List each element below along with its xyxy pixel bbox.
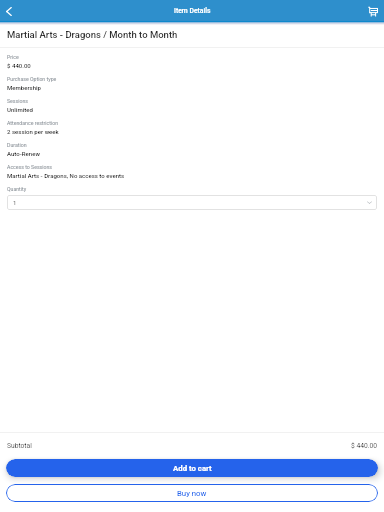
staticText: Martial Arts - Dragons, No access to eve… bbox=[7, 172, 125, 179]
staticText: Duration bbox=[7, 142, 27, 148]
staticText: Sessions bbox=[7, 98, 28, 104]
staticText: Auto-Renew bbox=[7, 150, 40, 157]
staticText: Buy now bbox=[177, 489, 207, 498]
staticText: Attendance restriction bbox=[7, 120, 59, 126]
staticText: $ 440.00 bbox=[351, 442, 377, 450]
staticText: Access to Sessions bbox=[7, 164, 53, 170]
staticText: Quantity bbox=[7, 186, 27, 192]
staticText: Subtotal bbox=[7, 442, 32, 450]
staticText: 1 bbox=[13, 199, 17, 206]
button[interactable]: Add to cart bbox=[6, 459, 378, 477]
staticText: Purchase Option type bbox=[7, 76, 57, 82]
button[interactable]: Back bbox=[0, 0, 17, 22]
staticText: $ 440.00 bbox=[7, 62, 31, 69]
staticText: Martial Arts - Dragons / Month to Month bbox=[7, 29, 178, 40]
staticText: Unlimited bbox=[7, 106, 33, 113]
staticText: 2 session per week bbox=[7, 128, 59, 135]
staticText: Price bbox=[7, 54, 19, 60]
button[interactable]: Quantity, 1 bbox=[7, 195, 377, 210]
staticText: Membership bbox=[7, 84, 41, 91]
staticText: Item Details bbox=[174, 7, 211, 15]
button[interactable]: Shopping cart bbox=[362, 0, 384, 22]
button[interactable]: Buy now bbox=[6, 484, 378, 502]
staticText: Add to cart bbox=[173, 464, 212, 473]
